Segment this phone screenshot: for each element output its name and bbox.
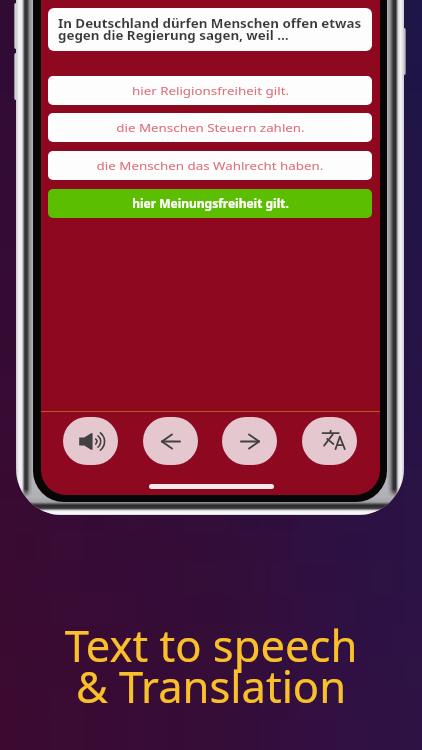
button[interactable]: hier Religionsfreiheit gilt. — [48, 76, 372, 105]
button[interactable]: die Menschen Steuern zahlen. — [48, 113, 372, 142]
staticText: In Deutschland dürfen Menschen offen etw… — [58, 15, 362, 44]
staticText: die Menschen Steuern zahlen. — [116, 120, 305, 136]
button[interactable]: Translate — [302, 417, 357, 465]
staticText: die Menschen das Wahlrecht haben. — [96, 158, 324, 174]
button[interactable]: Speak — [63, 417, 118, 465]
staticText: hier Meinungsfreiheit gilt. — [132, 196, 289, 212]
button[interactable]: Back — [143, 417, 198, 465]
staticText: hier Religionsfreiheit gilt. — [131, 83, 290, 99]
button[interactable]: Next — [222, 417, 277, 465]
staticText: Text to speech & Translation — [0, 615, 422, 715]
button[interactable]: In Deutschland dürfen Menschen offen etw… — [48, 8, 372, 51]
button[interactable]: die Menschen das Wahlrecht haben. — [48, 151, 372, 180]
button[interactable]: hier Meinungsfreiheit gilt. — [48, 189, 372, 218]
